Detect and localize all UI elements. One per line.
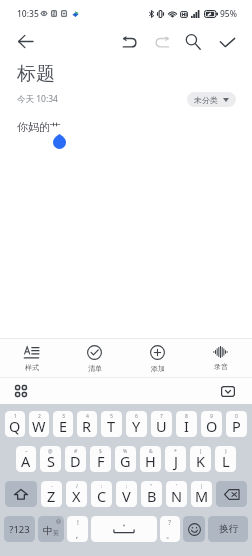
- staticText: 9: [210, 413, 213, 420]
- staticText: 样式: [25, 363, 39, 372]
- button[interactable]: @: [40, 446, 61, 472]
- staticText: D: [70, 451, 81, 471]
- button[interactable]: 样式: [0, 339, 63, 377]
- staticText: B: [147, 486, 157, 506]
- button[interactable]: Emoji: [183, 516, 205, 542]
- staticText: 3: [62, 413, 65, 420]
- staticText: 你妈的艹: [17, 120, 61, 134]
- button[interactable]: 添加: [126, 339, 189, 377]
- staticText: R: [82, 416, 92, 436]
- staticText: K: [196, 451, 205, 471]
- button[interactable]: 0: [226, 411, 247, 437]
- button[interactable]: Shift: [5, 481, 37, 507]
- button[interactable]: Back: [9, 27, 41, 56]
- staticText: ~: [25, 448, 28, 455]
- staticText: 5: [110, 413, 113, 420]
- staticText: $: [99, 448, 102, 455]
- button[interactable]: !: [67, 516, 88, 542]
- staticText: U: [156, 416, 167, 436]
- button[interactable]: 9: [201, 411, 222, 437]
- button[interactable]: Hide keyboard: [218, 381, 238, 401]
- button[interactable]: $: [90, 446, 111, 472]
- staticText: 添加: [151, 364, 165, 373]
- button[interactable]: (: [190, 446, 211, 472]
- staticText: O: [206, 416, 218, 436]
- staticText: !: [77, 518, 79, 528]
- staticText: ?: [168, 518, 172, 528]
- button[interactable]: 2: [29, 411, 49, 437]
- button[interactable]: %: [115, 446, 136, 472]
- staticText: ": [150, 483, 153, 490]
- button[interactable]: -: [41, 481, 62, 507]
- staticText: P: [232, 416, 241, 436]
- staticText: Z: [47, 486, 56, 506]
- staticText: H: [145, 451, 156, 471]
- button[interactable]: Backspace: [216, 481, 247, 507]
- button[interactable]: 6: [126, 411, 147, 437]
- button[interactable]: Search: [179, 28, 207, 56]
- staticText: /: [76, 483, 78, 490]
- button[interactable]: &: [140, 446, 161, 472]
- button[interactable]: 换行: [208, 516, 248, 542]
- staticText: Y: [132, 416, 141, 436]
- staticText: @: [48, 448, 53, 455]
- staticText: X: [72, 486, 81, 506]
- button[interactable]: ?123: [4, 516, 35, 542]
- button[interactable]: 清单: [63, 339, 126, 377]
- staticText: %: [123, 448, 128, 455]
- staticText: Q: [9, 416, 21, 436]
- staticText: 95%: [220, 8, 237, 20]
- staticText: 今天 10:34: [17, 93, 58, 105]
- button[interactable]: 录音: [189, 339, 252, 377]
- button[interactable]: 4: [77, 411, 97, 437]
- button[interactable]: Keyboard layout: [11, 381, 31, 401]
- staticText: W: [32, 416, 46, 436]
- staticText: 6: [135, 413, 138, 420]
- button[interactable]: *: [165, 446, 186, 472]
- staticText: 清单: [88, 364, 102, 373]
- staticText: 英: [53, 529, 59, 537]
- staticText: 录音: [214, 362, 228, 371]
- staticText: 中: [43, 524, 53, 537]
- button[interactable]: |: [191, 481, 212, 507]
- button[interactable]: Redo: [148, 28, 176, 56]
- button[interactable]: 7: [151, 411, 172, 437]
- button[interactable]: 3: [53, 411, 73, 437]
- button[interactable]: 8: [176, 411, 197, 437]
- button[interactable]: Done: [213, 28, 241, 56]
- button[interactable]: ': [166, 481, 187, 507]
- button[interactable]: Undo: [116, 28, 144, 56]
- staticText: #: [74, 448, 78, 455]
- staticText: 未分类: [194, 95, 218, 105]
- button[interactable]: Switch language: [38, 516, 64, 542]
- button[interactable]: ": [141, 481, 162, 507]
- staticText: V: [122, 486, 131, 506]
- staticText: ;: [126, 483, 128, 490]
- button[interactable]: Space: [91, 516, 157, 542]
- staticText: J: [174, 451, 178, 471]
- staticText: I: [184, 416, 189, 436]
- button[interactable]: 未分类: [187, 92, 236, 107]
- button[interactable]: #: [65, 446, 86, 472]
- staticText: N: [171, 486, 183, 506]
- staticText: S: [47, 451, 55, 471]
- button[interactable]: :: [91, 481, 112, 507]
- staticText: ,: [76, 529, 79, 540]
- button[interactable]: 5: [101, 411, 122, 437]
- staticText: A: [21, 451, 31, 471]
- button[interactable]: ): [215, 446, 236, 472]
- staticText: 换行: [219, 523, 238, 535]
- staticText: *: [174, 448, 177, 455]
- button[interactable]: ;: [116, 481, 137, 507]
- button[interactable]: 1: [5, 411, 25, 437]
- staticText: |: [200, 483, 203, 490]
- staticText: T: [107, 416, 116, 436]
- staticText: &: [149, 448, 153, 455]
- staticText: 10:35: [17, 8, 39, 20]
- staticText: ': [176, 483, 178, 490]
- staticText: G: [120, 451, 131, 471]
- staticText: (: [200, 448, 202, 455]
- button[interactable]: ?: [160, 516, 180, 542]
- button[interactable]: ~: [16, 446, 36, 472]
- button[interactable]: /: [66, 481, 87, 507]
